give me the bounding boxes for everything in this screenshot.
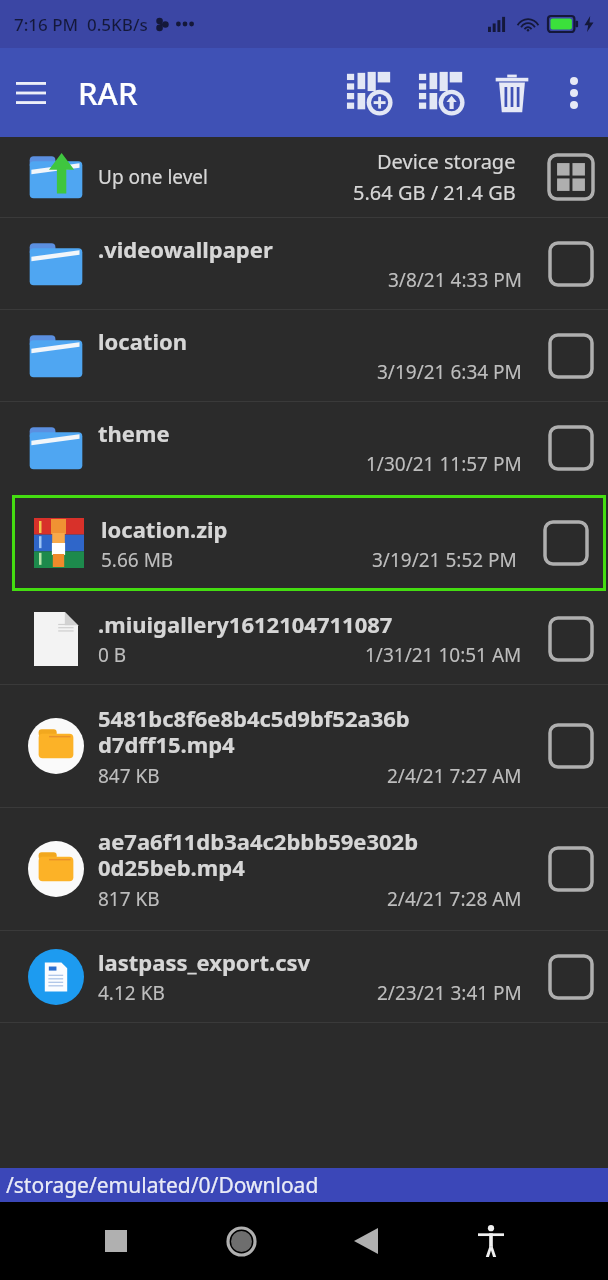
staticText: 3/19/21 5:52 PM [372, 547, 517, 573]
staticText: 2/4/21 7:27 AM [387, 763, 522, 789]
staticText: 5.66 MB [101, 547, 174, 573]
button[interactable]: Open navigation menu [0, 62, 62, 124]
staticText: lastpass_export.csv [98, 947, 311, 977]
staticText: 847 KB [98, 763, 160, 789]
staticText: location [98, 326, 188, 356]
staticText: 3/8/21 4:33 PM [388, 267, 522, 293]
staticText: 4.12 KB [98, 980, 165, 1006]
staticText: 3/19/21 6:34 PM [377, 359, 522, 385]
staticText: theme [98, 418, 170, 448]
staticText: 817 KB [98, 886, 160, 912]
button[interactable]: Back [338, 1213, 394, 1269]
staticText: 1/30/21 11:57 PM [366, 451, 522, 477]
button[interactable]: Home [213, 1213, 269, 1269]
button[interactable]: theme [0, 402, 608, 493]
button[interactable]: More options [546, 65, 602, 121]
staticText: 7:16 PM [14, 13, 79, 36]
staticText: 5.64 GB / 21.4 GB [353, 179, 516, 206]
staticText: .miuigallery1612104711087 [98, 609, 393, 639]
button[interactable]: Change view mode [547, 153, 595, 201]
button[interactable]: 5481bc8f6e8b4c5d9bf52a36b d7dff15.mp4 [0, 685, 608, 807]
staticText: ae7a6f11db3a4c2bbb59e302b 0d25beb.mp4 [98, 826, 419, 883]
staticText: location.zip [101, 514, 228, 544]
button[interactable]: Add to archive [334, 57, 406, 129]
staticText: 0 B [98, 642, 127, 668]
button[interactable]: .videowallpaper [0, 218, 608, 309]
staticText: 2/23/21 3:41 PM [377, 980, 522, 1006]
button[interactable]: location [0, 310, 608, 401]
staticText: .videowallpaper [98, 234, 273, 264]
button[interactable]: Accessibility [463, 1213, 519, 1269]
button[interactable]: lastpass_export.csv [0, 931, 608, 1022]
staticText: RAR [78, 72, 138, 114]
button[interactable]: Delete [478, 59, 546, 127]
staticText: 1/31/21 10:51 AM [365, 642, 522, 668]
button[interactable]: .miuigallery1612104711087 [0, 593, 608, 684]
button[interactable]: ae7a6f11db3a4c2bbb59e302b 0d25beb.mp4 [0, 808, 608, 930]
staticText: /storage/emulated/0/Download [6, 1171, 319, 1200]
button[interactable]: Up one level [0, 137, 608, 217]
staticText: 0.5KB/s [87, 13, 148, 36]
button[interactable]: Extract archive [406, 57, 478, 129]
staticText: 5481bc8f6e8b4c5d9bf52a36b d7dff15.mp4 [98, 703, 410, 760]
staticText: 2/4/21 7:28 AM [387, 886, 522, 912]
button[interactable]: /storage/emulated/0/Download [0, 1168, 608, 1202]
button[interactable]: Recent apps [88, 1213, 144, 1269]
staticText: Up one level [98, 164, 208, 190]
staticText: Device storage [377, 148, 516, 175]
button[interactable]: location.zip [15, 498, 603, 588]
